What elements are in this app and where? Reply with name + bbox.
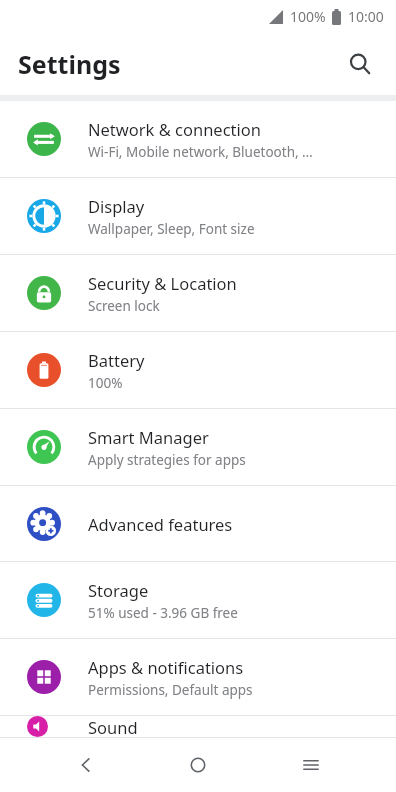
button[interactable]: Display	[0, 178, 396, 254]
staticText: Display	[88, 195, 145, 217]
button[interactable]: Recent apps	[284, 738, 338, 792]
staticText: 100%	[290, 7, 326, 26]
staticText: Smart Manager	[88, 426, 209, 448]
staticText: Wi-Fi, Mobile network, Bluetooth, …	[88, 143, 313, 161]
button[interactable]: Battery	[0, 332, 396, 408]
button[interactable]: Advanced features	[0, 486, 396, 561]
staticText: Sound	[88, 716, 138, 737]
button[interactable]: Security & Location	[0, 255, 396, 331]
button[interactable]: Network & connection	[0, 101, 396, 177]
staticText: Advanced features	[88, 513, 233, 535]
button[interactable]: Home	[171, 738, 225, 792]
button[interactable]: Back	[59, 738, 113, 792]
staticText: Apply strategies for apps	[88, 451, 246, 469]
staticText: Security & Location	[88, 272, 237, 294]
button[interactable]: Storage	[0, 562, 396, 638]
staticText: 10:00	[348, 7, 384, 26]
button[interactable]: Search	[340, 44, 380, 84]
staticText: 100%	[88, 374, 123, 392]
staticText: Permissions, Default apps	[88, 681, 253, 699]
staticText: Settings	[18, 47, 121, 81]
button[interactable]: Smart Manager	[0, 409, 396, 485]
staticText: Storage	[88, 579, 149, 601]
staticText: 51% used - 3.96 GB free	[88, 604, 238, 622]
button[interactable]: Apps & notifications	[0, 639, 396, 715]
button[interactable]: Sound	[0, 716, 396, 737]
staticText: Battery	[88, 349, 145, 371]
staticText: Network & connection	[88, 118, 261, 140]
staticText: Wallpaper, Sleep, Font size	[88, 220, 255, 238]
staticText: Apps & notifications	[88, 656, 244, 678]
staticText: Screen lock	[88, 297, 160, 315]
